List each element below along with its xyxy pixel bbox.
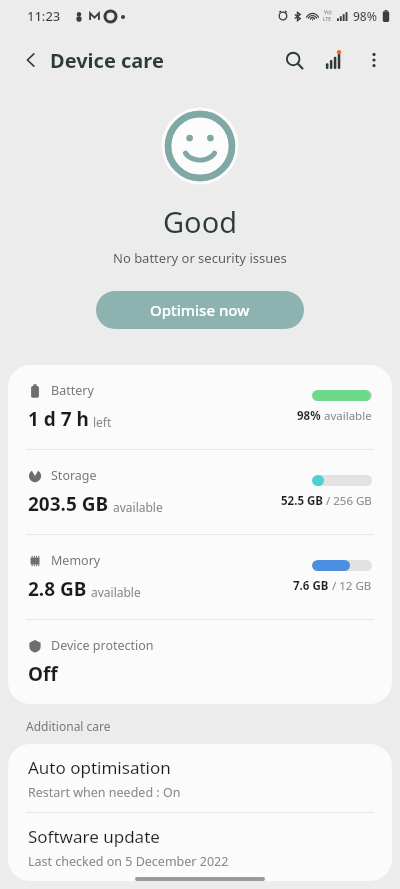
staticText: Auto optimisation (28, 756, 171, 779)
staticText: Software update (28, 825, 160, 848)
staticText: 52.5 GB (281, 493, 323, 509)
button[interactable]: Search (274, 40, 314, 80)
button[interactable]: Storage (8, 450, 392, 534)
staticText: Optimise now (150, 300, 250, 320)
staticText: / 256 GB (323, 493, 372, 509)
button[interactable]: Software update (8, 813, 392, 881)
staticText: 98% (297, 408, 321, 424)
staticText: 1 d 7 h (28, 406, 89, 432)
staticText: Off (28, 661, 58, 687)
button[interactable]: Battery (8, 365, 392, 449)
button[interactable]: Auto optimisation (8, 744, 392, 812)
staticText: 2.8 GB (28, 576, 87, 602)
staticText: Restart when needed : On (28, 784, 181, 801)
staticText: 7.6 GB (293, 578, 329, 594)
staticText: 11:23 (27, 7, 61, 25)
staticText: Good (163, 202, 238, 241)
button[interactable]: Usage statistics (314, 40, 354, 80)
staticText: LTE (323, 16, 332, 23)
button[interactable]: Optimise now (96, 291, 304, 329)
button[interactable]: Memory (8, 535, 392, 619)
staticText: Device protection (51, 637, 154, 654)
button[interactable]: Device protection (8, 620, 392, 704)
staticText: available (321, 408, 372, 424)
staticText: left (93, 414, 112, 430)
staticText: Device care (50, 47, 164, 74)
staticText: No battery or security issues (113, 249, 287, 267)
staticText: 98% (353, 8, 377, 24)
staticText: Last checked on 5 December 2022 (28, 853, 229, 870)
staticText: Battery (51, 382, 94, 399)
staticText: Memory (51, 552, 101, 569)
staticText: / 12 GB (329, 578, 372, 594)
staticText: available (113, 499, 163, 515)
staticText: 203.5 GB (28, 491, 109, 517)
button[interactable]: More options (354, 40, 394, 80)
staticText: Additional care (26, 718, 111, 734)
staticText: Storage (51, 467, 97, 484)
staticText: available (91, 584, 141, 600)
staticText: Vo) (324, 9, 332, 16)
button[interactable]: Back (14, 43, 48, 77)
